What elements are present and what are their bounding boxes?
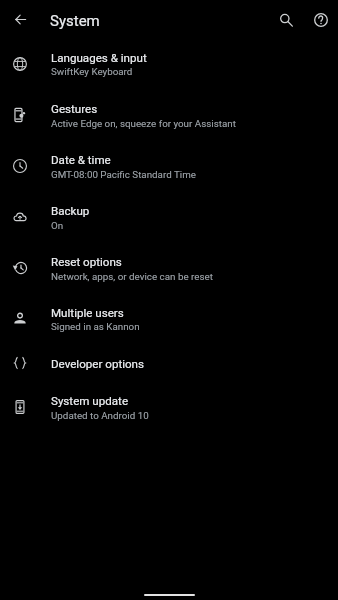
button[interactable]: Help (309, 7, 333, 31)
button[interactable]: Gestures (0, 90, 338, 140)
staticText: System update (51, 394, 129, 408)
button[interactable]: Backup (0, 191, 338, 241)
button[interactable]: Developer options (0, 337, 338, 374)
staticText: Gestures (51, 102, 98, 116)
button[interactable]: Date & time (0, 140, 338, 190)
staticText: On (51, 219, 64, 231)
staticText: Multiple users (51, 306, 124, 320)
staticText: Active Edge on, squeeze for your Assista… (51, 117, 236, 129)
staticText: Languages & input (51, 51, 147, 65)
staticText: Developer options (51, 357, 144, 371)
button[interactable]: Languages & input (0, 38, 338, 88)
staticText: Date & time (51, 153, 111, 167)
button[interactable]: Reset options (0, 242, 338, 292)
staticText: System (50, 12, 100, 30)
button[interactable]: System update (0, 381, 338, 431)
button[interactable]: Search (274, 7, 298, 31)
staticText: GMT-08:00 Pacific Standard Time (51, 168, 196, 180)
staticText: Backup (51, 204, 90, 218)
button[interactable]: Multiple users (0, 293, 338, 343)
staticText: SwiftKey Keyboard (51, 65, 133, 77)
staticText: Signed in as Kannon (51, 320, 140, 332)
button[interactable]: Back (8, 7, 32, 31)
staticText: Reset options (51, 255, 122, 269)
staticText: Network, apps, or device can be reset (51, 270, 213, 282)
staticText: Updated to Android 10 (51, 409, 149, 421)
